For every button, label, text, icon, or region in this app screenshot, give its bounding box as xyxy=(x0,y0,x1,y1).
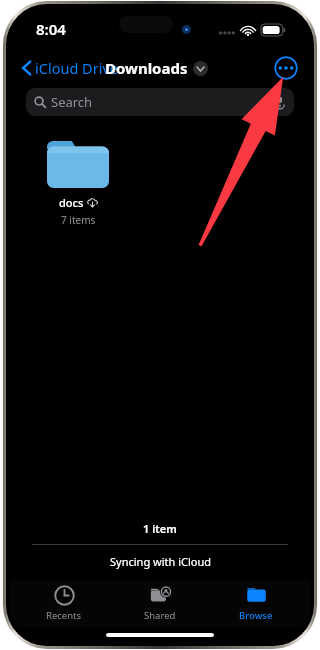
button[interactable]: Search xyxy=(26,88,294,116)
staticText: docs xyxy=(59,195,84,210)
button[interactable]: More options xyxy=(274,56,298,80)
button[interactable]: docs xyxy=(38,138,118,227)
staticText: Syncing with iCloud xyxy=(110,554,211,569)
button[interactable]: Downloads xyxy=(102,58,211,78)
staticText: Recents xyxy=(46,609,82,622)
staticText: iCloud Drive xyxy=(35,58,118,78)
staticText: Shared xyxy=(144,609,176,622)
staticText: Search xyxy=(51,93,93,111)
button[interactable]: Recents xyxy=(22,580,106,622)
staticText: 1 item xyxy=(143,521,177,536)
staticText: 7 items xyxy=(61,213,96,227)
staticText: 8:04 xyxy=(36,19,66,39)
staticText: Downloads xyxy=(105,58,188,78)
button[interactable]: iCloud Drive xyxy=(18,56,122,80)
button[interactable]: Shared xyxy=(118,580,202,622)
staticText: Browse xyxy=(239,609,273,622)
button[interactable]: Voice search xyxy=(273,95,287,109)
button[interactable]: Browse xyxy=(214,580,298,622)
